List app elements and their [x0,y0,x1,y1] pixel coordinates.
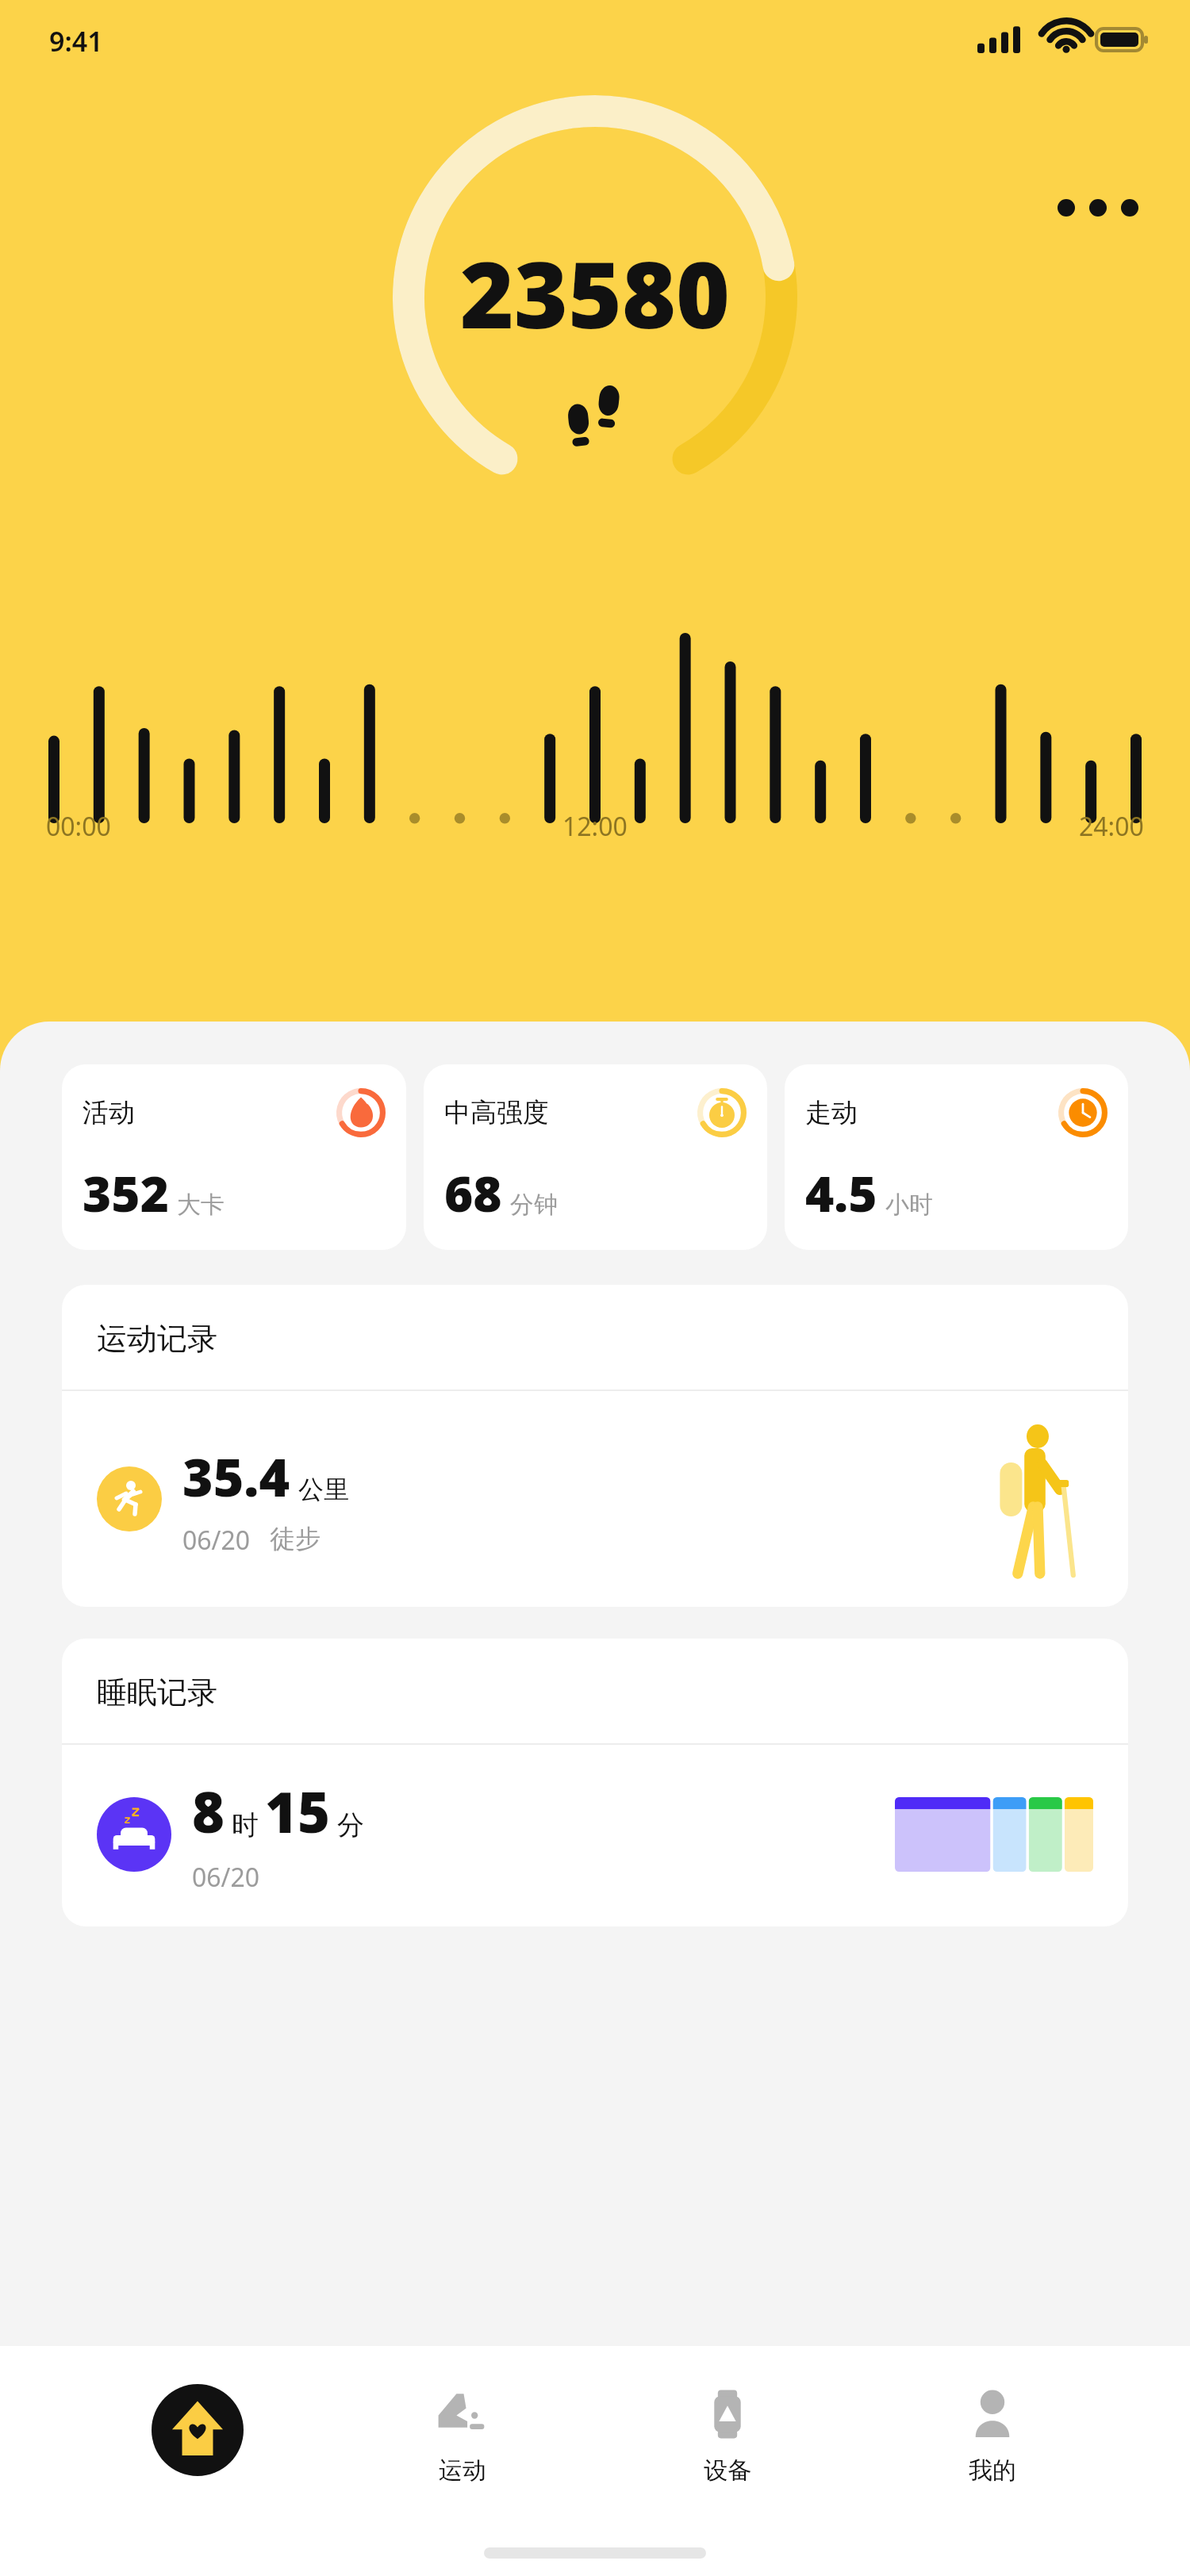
staticText: 我的 [969,2455,1016,2486]
button[interactable]: 运动记录 [62,1285,1128,1607]
staticText: 中高强度 [444,1096,549,1129]
staticText: 分 [337,1808,364,1842]
button[interactable]: 睡眠记录 [62,1639,1128,1926]
staticText: 分钟 [510,1190,558,1220]
staticText: 徒步 [270,1523,321,1554]
staticText: 68 [444,1160,502,1226]
staticText: 睡眠记录 [97,1673,217,1712]
staticText: 23580 [460,230,730,355]
staticText: 06/20 [192,1860,260,1895]
staticText: 运动 [439,2455,486,2486]
button[interactable]: Home [130,2384,265,2535]
staticText: 24:00 [1079,809,1144,844]
staticText: 运动记录 [97,1320,217,1358]
staticText: 9:41 [49,23,103,59]
button[interactable]: 走动 [785,1064,1128,1250]
staticText: 4.5 [805,1160,877,1226]
button[interactable]: More options [1049,176,1149,240]
button[interactable]: 中高强度 [424,1064,767,1250]
staticText: 00:00 [46,809,111,844]
staticText: 小时 [885,1190,933,1220]
staticText: 大卡 [177,1190,225,1220]
button[interactable]: 设备 [660,2384,795,2535]
button[interactable]: 我的 [925,2384,1060,2535]
staticText: 公里 [298,1474,349,1505]
staticText: 活动 [83,1096,135,1129]
staticText: 15 [265,1773,331,1849]
button[interactable]: 活动 [62,1064,406,1250]
staticText: 352 [83,1160,169,1226]
staticText: 06/20 [182,1523,251,1558]
button[interactable]: 运动 [395,2384,530,2535]
staticText: 设备 [704,2455,751,2486]
staticText: 时 [232,1808,259,1842]
staticText: 35.4 [182,1440,290,1512]
staticText: 12:00 [562,809,628,844]
staticText: 8 [192,1773,225,1849]
staticText: 走动 [805,1096,858,1129]
